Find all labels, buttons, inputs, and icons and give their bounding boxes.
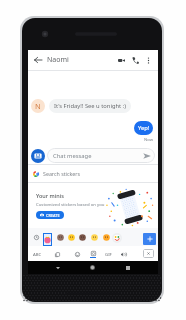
button[interactable]: CREATE <box>36 211 64 219</box>
button[interactable]: Call <box>129 54 142 67</box>
button[interactable]: Sticker pack <box>101 232 111 242</box>
staticText: GIF <box>105 251 112 257</box>
button[interactable]: Sticker pack <box>89 232 99 242</box>
staticText: Naomi <box>47 55 69 65</box>
staticText: It's Friday!! See u tonight :) <box>54 102 126 110</box>
button[interactable]: GIF <box>104 250 113 258</box>
button[interactable]: Sticker pack <box>77 232 87 242</box>
button[interactable]: Yep! <box>134 121 153 135</box>
button[interactable]: Emoji <box>72 249 82 259</box>
button[interactable]: Emoji kitchen <box>111 232 122 243</box>
staticText: Customized stickers based on you <box>36 201 105 207</box>
button[interactable]: Backspace <box>143 249 154 258</box>
staticText: Chat message <box>53 152 92 160</box>
button[interactable]: Add sticker pack <box>143 233 156 245</box>
staticText: Now <box>144 137 153 143</box>
button[interactable]: Open stickers <box>31 149 45 163</box>
staticText: Search stickers <box>43 170 81 177</box>
staticText: ABC <box>33 251 42 257</box>
button[interactable]: Sticker pack <box>43 233 52 246</box>
button[interactable]: Back <box>32 54 44 66</box>
button[interactable]: Sound <box>118 249 128 259</box>
button[interactable]: More options <box>142 54 154 66</box>
button[interactable]: It's Friday!! See u tonight :) <box>49 99 131 113</box>
button[interactable]: Recent stickers <box>31 232 41 242</box>
staticText: CREATE <box>46 213 60 218</box>
button[interactable]: Back <box>51 261 65 274</box>
button[interactable]: Chat message <box>47 148 155 163</box>
button[interactable]: Sticker pack <box>66 232 76 242</box>
staticText: Yep! <box>138 124 150 132</box>
staticText: N <box>35 101 41 111</box>
button[interactable]: Clipboard <box>52 249 62 259</box>
staticText: Your minis <box>36 192 64 199</box>
button[interactable]: Video call <box>115 54 128 67</box>
button[interactable]: Recents <box>121 261 135 274</box>
button[interactable]: Stickers <box>88 249 98 259</box>
button[interactable]: Search stickers <box>28 165 158 182</box>
button[interactable]: Home <box>85 261 99 274</box>
button[interactable]: Sticker pack <box>55 232 65 242</box>
button[interactable]: ABC <box>32 250 43 258</box>
